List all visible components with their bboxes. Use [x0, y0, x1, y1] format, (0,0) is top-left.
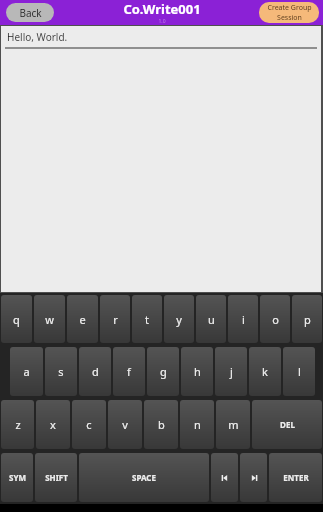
staticText: p — [304, 312, 311, 327]
staticText: j — [230, 364, 233, 379]
staticText: Co.Write001 — [123, 0, 201, 18]
staticText: r — [113, 312, 118, 327]
staticText: i — [242, 312, 245, 327]
staticText: ENTER — [283, 472, 309, 483]
button[interactable]: l — [283, 347, 315, 396]
button[interactable]: Cursor left — [211, 453, 238, 502]
staticText: n — [194, 417, 201, 432]
staticText: k — [262, 364, 268, 379]
staticText: w — [45, 312, 54, 327]
button[interactable]: s — [45, 347, 77, 396]
button[interactable]: SHIFT — [35, 453, 77, 502]
staticText: z — [15, 417, 21, 432]
staticText: e — [79, 312, 86, 327]
staticText: Hello, World. — [7, 30, 68, 44]
staticText: x — [50, 417, 56, 432]
button[interactable]: g — [147, 347, 179, 396]
staticText: t — [145, 312, 149, 327]
button[interactable]: j — [215, 347, 247, 396]
staticText: l — [298, 364, 301, 379]
staticText: d — [92, 364, 99, 379]
staticText: Back — [19, 6, 42, 20]
button[interactable]: w — [34, 295, 65, 343]
button[interactable]: r — [100, 295, 130, 343]
button[interactable]: ENTER — [269, 453, 322, 502]
staticText: DEL — [280, 419, 295, 430]
button[interactable]: u — [196, 295, 226, 343]
button[interactable]: Back — [6, 3, 54, 22]
staticText: f — [127, 364, 131, 379]
button[interactable]: t — [132, 295, 162, 343]
staticText: u — [208, 312, 215, 327]
button[interactable]: y — [164, 295, 194, 343]
button[interactable]: d — [79, 347, 111, 396]
button[interactable]: h — [181, 347, 213, 396]
button[interactable]: SPACE — [79, 453, 209, 502]
staticText: SYM — [9, 472, 26, 483]
button[interactable]: k — [249, 347, 281, 396]
button[interactable]: Cursor right — [240, 453, 267, 502]
staticText: Create Group — [267, 3, 312, 13]
staticText: m — [228, 417, 239, 432]
staticText: y — [176, 312, 182, 327]
staticText: b — [158, 417, 165, 432]
button[interactable]: a — [10, 347, 43, 396]
button[interactable]: e — [67, 295, 98, 343]
button[interactable]: v — [108, 400, 142, 449]
button[interactable]: q — [1, 295, 32, 343]
staticText: a — [23, 364, 30, 379]
button[interactable]: DEL — [252, 400, 322, 449]
button[interactable]: c — [72, 400, 106, 449]
button[interactable]: f — [113, 347, 145, 396]
button[interactable]: i — [228, 295, 258, 343]
button[interactable]: z — [1, 400, 34, 449]
staticText: c — [86, 417, 92, 432]
button[interactable]: SYM — [1, 453, 33, 502]
staticText: Session — [277, 13, 302, 23]
staticText: h — [194, 364, 201, 379]
button[interactable]: Create Group — [259, 2, 319, 23]
staticText: g — [160, 364, 167, 379]
staticText: 1.0 — [158, 18, 166, 25]
staticText: s — [58, 364, 64, 379]
button[interactable]: n — [180, 400, 214, 449]
button[interactable]: m — [216, 400, 250, 449]
button[interactable]: p — [292, 295, 322, 343]
staticText: SHIFT — [45, 472, 68, 483]
staticText: o — [272, 312, 279, 327]
staticText: SPACE — [132, 472, 156, 483]
button[interactable]: o — [260, 295, 290, 343]
button[interactable]: Hello, World. — [1, 26, 321, 292]
button[interactable]: x — [36, 400, 70, 449]
button[interactable]: b — [144, 400, 178, 449]
staticText: q — [13, 312, 20, 327]
staticText: v — [122, 417, 128, 432]
